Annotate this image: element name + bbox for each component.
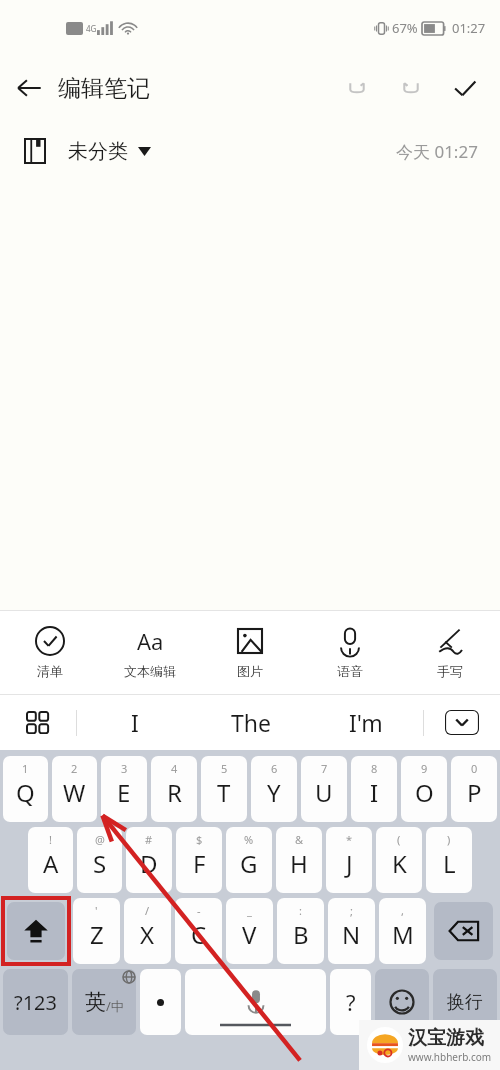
button[interactable]: $ xyxy=(176,827,222,893)
button[interactable]: * xyxy=(326,827,372,893)
button[interactable]: # xyxy=(126,827,172,893)
staticText: Y xyxy=(267,776,281,809)
staticText: N xyxy=(342,918,361,951)
staticText: www.hbherb.com xyxy=(408,1050,492,1064)
staticText: # xyxy=(145,832,153,847)
button[interactable]: : xyxy=(277,898,324,964)
staticText: The xyxy=(231,707,271,738)
staticText: G xyxy=(240,847,258,880)
button[interactable]: The xyxy=(193,695,308,750)
button[interactable]: Undo xyxy=(330,61,384,115)
button[interactable]: / xyxy=(124,898,171,964)
button[interactable]: ; xyxy=(328,898,375,964)
staticText: E xyxy=(117,776,131,809)
staticText: 今天 01:27 xyxy=(396,140,478,163)
staticText: K xyxy=(392,847,407,880)
staticText: C xyxy=(191,918,207,951)
staticText: 01:27 xyxy=(452,19,486,37)
staticText: Q xyxy=(16,776,35,809)
button[interactable]: Save xyxy=(438,61,492,115)
staticText: @ xyxy=(95,832,105,847)
staticText: U xyxy=(315,776,333,809)
button[interactable]: @ xyxy=(77,827,122,893)
staticText: ; xyxy=(350,903,353,918)
staticText: F xyxy=(193,847,206,880)
button[interactable]: ? xyxy=(330,969,371,1035)
staticText: 图片 xyxy=(237,663,263,679)
staticText: A xyxy=(43,847,59,880)
button[interactable]: Keyboard menu xyxy=(0,695,76,750)
button[interactable]: I xyxy=(77,695,193,750)
button[interactable]: & xyxy=(276,827,322,893)
button[interactable]: % xyxy=(226,827,272,893)
button[interactable]: 清单 xyxy=(0,611,100,694)
button[interactable]: Emoji xyxy=(375,969,429,1035)
button[interactable]: 5 xyxy=(201,756,247,822)
button[interactable]: 换行 xyxy=(433,969,497,1035)
button[interactable]: Aa xyxy=(100,611,200,694)
staticText: T xyxy=(217,776,231,809)
button[interactable] xyxy=(140,969,181,1035)
button[interactable]: 9 xyxy=(401,756,447,822)
staticText: ?123 xyxy=(14,989,57,1016)
staticText: H xyxy=(290,847,308,880)
staticText: , xyxy=(401,903,404,918)
staticText: * xyxy=(346,832,353,847)
staticText: V xyxy=(242,918,257,951)
button[interactable]: 图片 xyxy=(200,611,300,694)
staticText: 1 xyxy=(22,761,29,776)
staticText: ( xyxy=(397,832,401,847)
button[interactable]: _ xyxy=(226,898,273,964)
button[interactable]: 手写 xyxy=(400,611,500,694)
button[interactable]: , xyxy=(379,898,426,964)
button[interactable]: 未分类 xyxy=(24,138,151,164)
staticText: & xyxy=(295,832,304,847)
button[interactable]: 1 xyxy=(3,756,48,822)
staticText: L xyxy=(443,847,456,880)
button[interactable]: Hide keyboard xyxy=(424,695,500,750)
staticText: D xyxy=(140,847,158,880)
staticText: 未分类 xyxy=(68,139,128,164)
staticText: $ xyxy=(196,832,203,847)
button[interactable]: 6 xyxy=(251,756,297,822)
button[interactable]: 7 xyxy=(301,756,347,822)
staticText: 汉宝游戏 xyxy=(408,1026,484,1050)
button[interactable]: Back xyxy=(0,59,58,117)
staticText: : xyxy=(299,903,302,918)
staticText: 5 xyxy=(221,761,228,776)
staticText: _ xyxy=(247,903,252,918)
staticText: 9 xyxy=(421,761,428,776)
staticText: R xyxy=(167,776,182,809)
button[interactable]: Space xyxy=(185,969,326,1035)
button[interactable]: 2 xyxy=(52,756,97,822)
staticText: % xyxy=(244,832,254,847)
button[interactable]: ! xyxy=(28,827,73,893)
staticText: 8 xyxy=(371,761,378,776)
button[interactable]: 0 xyxy=(451,756,497,822)
staticText: I'm xyxy=(349,707,383,738)
button[interactable]: 3 xyxy=(101,756,147,822)
staticText: 3 xyxy=(121,761,128,776)
staticText: B xyxy=(293,918,309,951)
button[interactable]: Redo xyxy=(384,61,438,115)
button[interactable]: - xyxy=(175,898,222,964)
staticText: - xyxy=(197,903,201,918)
button[interactable]: ?123 xyxy=(3,969,68,1035)
staticText: M xyxy=(392,918,414,951)
button[interactable]: Backspace xyxy=(434,902,493,960)
button[interactable]: I'm xyxy=(308,695,423,750)
staticText: X xyxy=(140,918,155,951)
button[interactable]: 8 xyxy=(351,756,397,822)
button[interactable]: ' xyxy=(73,898,120,964)
staticText: 4 xyxy=(171,761,178,776)
staticText: 0 xyxy=(471,761,478,776)
button[interactable]: 4 xyxy=(151,756,197,822)
button[interactable]: 语音 xyxy=(300,611,400,694)
button[interactable]: Shift xyxy=(7,902,65,960)
button[interactable]: ) xyxy=(426,827,472,893)
button[interactable]: 英 xyxy=(72,969,136,1035)
staticText: ! xyxy=(49,832,52,847)
button[interactable]: ( xyxy=(376,827,422,893)
staticText: W xyxy=(63,776,86,809)
staticText: /中 xyxy=(106,997,124,1015)
